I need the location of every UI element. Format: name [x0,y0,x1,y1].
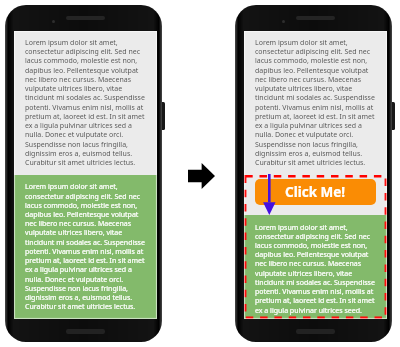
staticText: tincidunt mi sodales ac. Suspendisse [25,93,145,103]
staticText: lacus commodo, molestie est non, [255,56,368,66]
staticText: Lorem ipsum dolor sit amet, [25,182,118,192]
staticText: Lorem ipsum dolor sit amet, [25,38,118,48]
staticText: potenti. Vivamus enim nisl, mollis at [25,247,144,257]
staticText: consectetur adipiscing elit. Sed nec [255,47,371,57]
staticText: lacus commodo, molestie est non, [25,201,138,211]
staticText: potenti. Vivamus enim nisl, mollis at [255,287,374,297]
staticText: dignissim eros a, euismod tellus. [25,149,133,159]
staticText: nec libero nec cursus. Maecenas [255,259,362,269]
staticText: vulputate ultrices libero, vitae [25,228,123,238]
staticText: nec libero nec cursus. Maecenas [25,219,132,229]
staticText: dapibus leo. Pellentesque volutpat [255,250,369,260]
staticText: pretium at, laoreet id est. In sit amet [25,112,145,122]
staticText: Suspendisse non lacus fringilla, [25,284,128,294]
staticText: Suspendisse non lacus fringilla, [255,140,358,150]
staticText: ex a ligula pulvinar ultrices seed. [255,306,362,316]
staticText: potenti. Vivamus enim nisl, mollis at [25,103,144,113]
staticText: pretium at, laoreet id est. In sit amet [255,112,375,122]
staticText: dapibus leo. Pellentesque volutpat [25,210,139,220]
staticText: consectetur adipiscing elit. Sed nec [255,232,371,242]
staticText: dignissim eros a, euismod tellus. [255,149,363,159]
staticText: ex a ligula pulvinar ultrices sed a [255,121,362,131]
staticText: vulputate ultrices libero, vitae [25,84,123,94]
staticText: Click Me! [285,183,346,201]
staticText: Curabitur sit amet ultricies lectus. [25,158,136,168]
staticText: vulputate ultrices libero, vitae [255,269,353,279]
staticText: ex a ligula pulvinar ultrices sed a [25,121,132,131]
staticText: potenti. Vivamus enim nisl, mollis at [255,103,374,113]
button[interactable]: Click Me! [255,179,376,205]
staticText: tincidunt mi sodales ac. Suspendisse [255,93,375,103]
staticText: dapibus leo. Pellentesque volutpat [255,66,369,76]
staticText: tincidunt mi sodales ac. Suspendisse [255,278,375,288]
staticText: consectetur adipiscing elit. Sed nec [25,47,141,57]
staticText: pretium at, laoreet id est. In sit amet [255,296,375,306]
staticText: tincidunt mi sodales ac. Suspendisse [25,238,145,248]
staticText: Suspendisse non lacus fringilla, [25,140,128,150]
staticText: consectetur adipiscing elit. Sed nec [25,192,141,202]
staticText: ex a ligula pulvinar ultrices sed a [25,265,132,275]
staticText: lacus commodo, molestie est non, [25,56,138,66]
staticText: nulla. Donec et vulputate orci. [255,130,354,140]
staticText: nec libero nec cursus. Maecenas [25,75,132,85]
staticText: vulputate ultrices libero, vitae [255,84,353,94]
staticText: pretium at, laoreet id est. In sit amet [25,256,145,266]
staticText: Lorem ipsum dolor sit amet, [255,38,348,48]
other: Transforms into [188,163,215,189]
staticText: Curabitur sit amet ultricies lectus. [25,302,136,312]
staticText: Lorem ipsum dolor sit amet, [255,223,348,233]
staticText: Curabitur sit amet ultricies lectus. [255,158,366,168]
staticText: dapibus leo. Pellentesque volutpat [25,66,139,76]
staticText: nulla. Donec et vulputate orci. [25,130,124,140]
staticText: lacus commodo, molestie est non, [255,241,368,251]
staticText: nec libero nec cursus. Maecenas [255,75,362,85]
staticText: nulla. Donec et vulputate orci. [25,275,124,285]
staticText: dignissim eros a, euismod tellus. [25,293,133,303]
